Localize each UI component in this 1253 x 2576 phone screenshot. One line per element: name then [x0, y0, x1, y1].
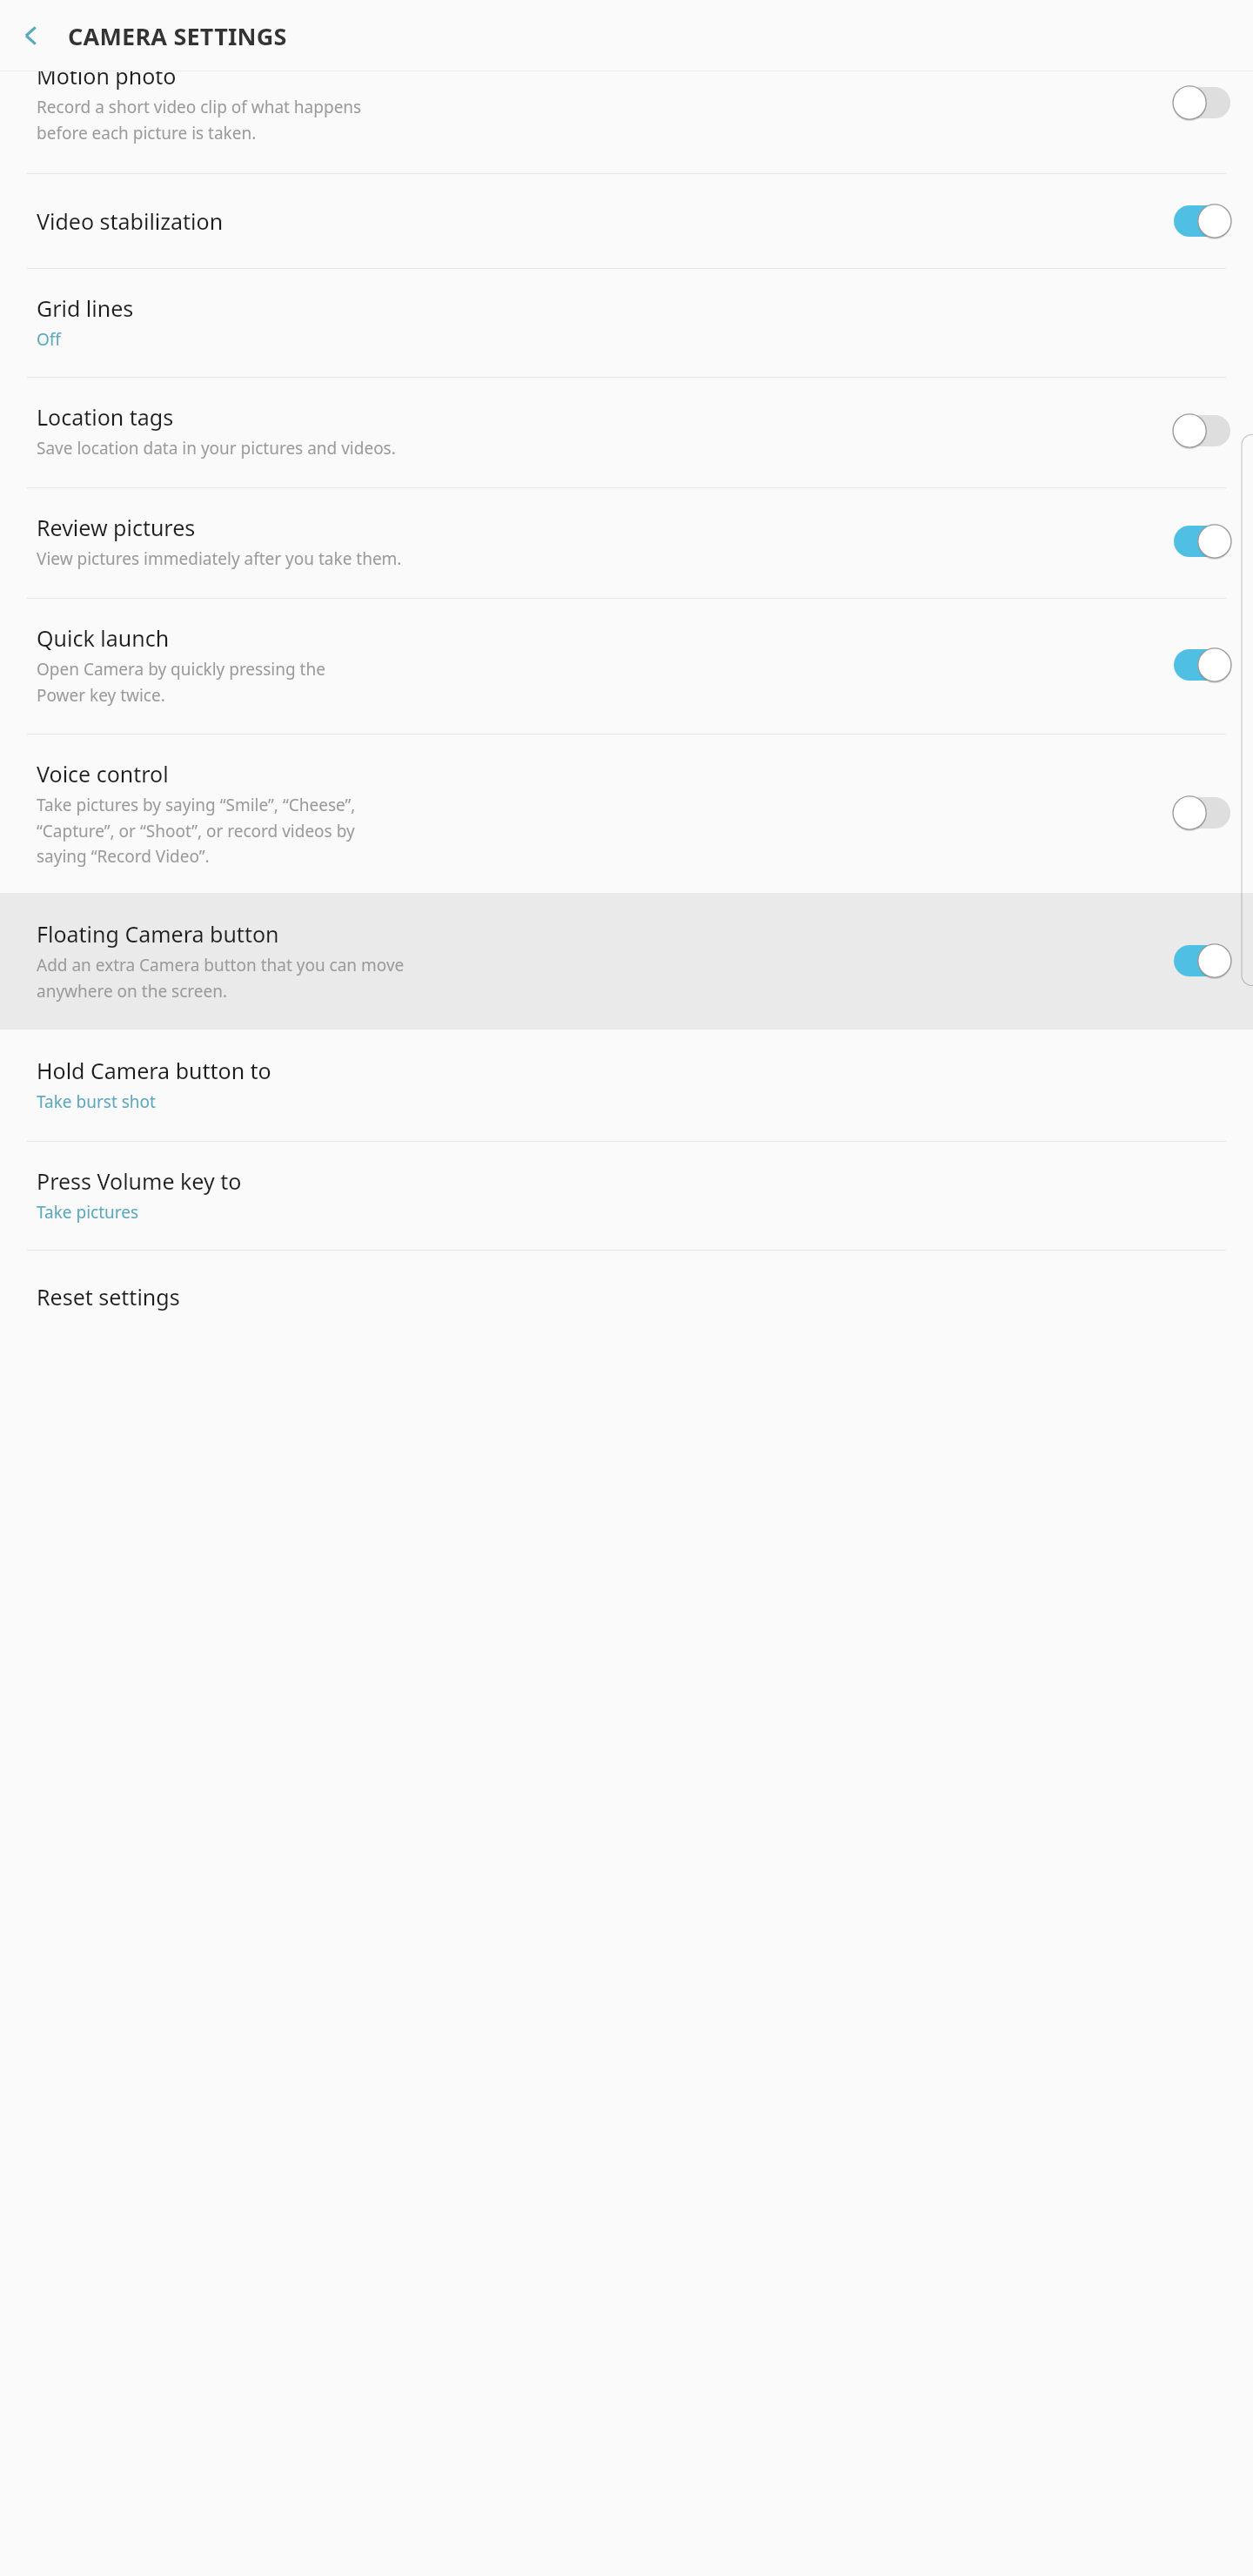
staticText: Quick launch: [37, 623, 170, 653]
button[interactable]: Reset settings: [0, 1251, 1253, 1343]
staticText: Voice control: [37, 759, 169, 788]
staticText: Review pictures: [37, 513, 196, 542]
staticText: Take pictures: [37, 1201, 139, 1224]
staticText: Record a short video clip of what happen…: [37, 96, 362, 144]
staticText: Video stabilization: [37, 206, 224, 236]
staticText: Press Volume key to: [37, 1166, 242, 1196]
staticText: Take burst shot: [37, 1090, 156, 1113]
button[interactable]: Floating Camera button: [0, 893, 1253, 1030]
staticText: Add an extra Camera button that you can …: [37, 954, 405, 1002]
button[interactable]: Motion photo: [0, 71, 1253, 173]
staticText: Floating Camera button: [37, 919, 279, 949]
button[interactable]: Back: [9, 13, 54, 58]
button[interactable]: Quick launch: [0, 599, 1253, 734]
button[interactable]: On: [1174, 647, 1230, 682]
button[interactable]: Off: [1174, 85, 1230, 120]
staticText: CAMERA SETTINGS: [68, 20, 287, 52]
staticText: Grid lines: [37, 293, 134, 323]
staticText: View pictures immediately after you take…: [37, 547, 402, 570]
button[interactable]: Review pictures: [0, 488, 1253, 598]
staticText: Motion photo: [37, 71, 177, 91]
button[interactable]: Location tags: [0, 378, 1253, 487]
staticText: Save location data in your pictures and …: [37, 437, 396, 460]
button[interactable]: On: [1174, 204, 1230, 238]
staticText: Off: [37, 328, 61, 351]
staticText: Take pictures by saying “Smile”, “Cheese…: [37, 794, 356, 867]
button[interactable]: On: [1174, 943, 1230, 978]
staticText: Open Camera by quickly pressing the Powe…: [37, 658, 325, 706]
staticText: Reset settings: [37, 1282, 180, 1311]
staticText: Hold Camera button to: [37, 1056, 271, 1085]
button[interactable]: Hold Camera button to: [0, 1030, 1253, 1141]
button[interactable]: Video stabilization: [0, 174, 1253, 268]
button[interactable]: Off: [1174, 795, 1230, 830]
staticText: Location tags: [37, 402, 174, 432]
button[interactable]: On: [1174, 524, 1230, 559]
button[interactable]: Grid lines: [0, 269, 1253, 377]
button[interactable]: Voice control: [0, 735, 1253, 893]
button[interactable]: Press Volume key to: [0, 1142, 1253, 1250]
button[interactable]: Off: [1174, 413, 1230, 448]
